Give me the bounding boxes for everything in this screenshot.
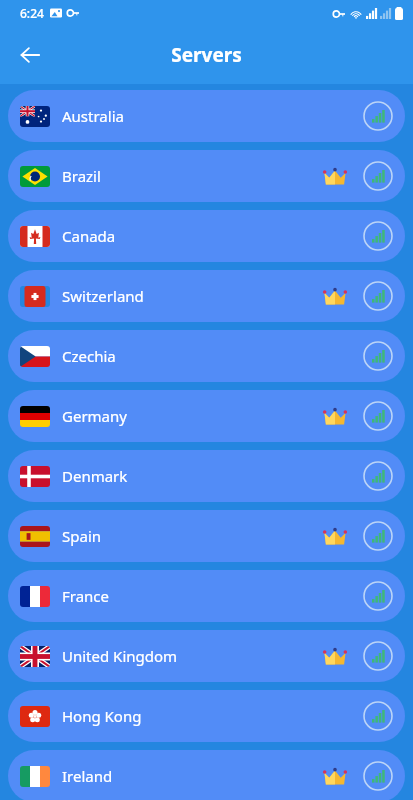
button[interactable]: France: [8, 570, 405, 622]
staticText: Canada: [62, 226, 323, 246]
staticText: Denmark: [62, 466, 323, 486]
button[interactable]: Signal strength: [361, 639, 395, 673]
button[interactable]: Canada: [8, 210, 405, 262]
button[interactable]: Signal strength: [361, 519, 395, 553]
button[interactable]: Signal strength: [361, 99, 395, 133]
button[interactable]: Ireland: [8, 750, 405, 800]
button[interactable]: Signal strength: [361, 759, 395, 793]
staticText: Australia: [62, 106, 323, 126]
button[interactable]: Czechia: [8, 330, 405, 382]
staticText: United Kingdom: [62, 646, 323, 666]
button[interactable]: Signal strength: [361, 699, 395, 733]
staticText: Czechia: [62, 346, 323, 366]
staticText: Servers: [171, 42, 242, 68]
button[interactable]: Signal strength: [361, 279, 395, 313]
button[interactable]: Denmark: [8, 450, 405, 502]
button[interactable]: Signal strength: [361, 399, 395, 433]
staticText: 6:24: [20, 5, 44, 21]
button[interactable]: Back: [8, 33, 52, 77]
button[interactable]: Switzerland: [8, 270, 405, 322]
button[interactable]: United Kingdom: [8, 630, 405, 682]
button[interactable]: Brazil: [8, 150, 405, 202]
staticText: France: [62, 586, 323, 606]
button[interactable]: Australia: [8, 90, 405, 142]
staticText: Switzerland: [62, 286, 323, 306]
staticText: Germany: [62, 406, 323, 426]
button[interactable]: Signal strength: [361, 579, 395, 613]
staticText: Ireland: [62, 766, 323, 786]
button[interactable]: Hong Kong: [8, 690, 405, 742]
button[interactable]: Signal strength: [361, 459, 395, 493]
button[interactable]: Germany: [8, 390, 405, 442]
staticText: Brazil: [62, 166, 323, 186]
staticText: Spain: [62, 526, 323, 546]
button[interactable]: Signal strength: [361, 339, 395, 373]
button[interactable]: Signal strength: [361, 159, 395, 193]
staticText: Hong Kong: [62, 706, 323, 726]
button[interactable]: Signal strength: [361, 219, 395, 253]
button[interactable]: Spain: [8, 510, 405, 562]
